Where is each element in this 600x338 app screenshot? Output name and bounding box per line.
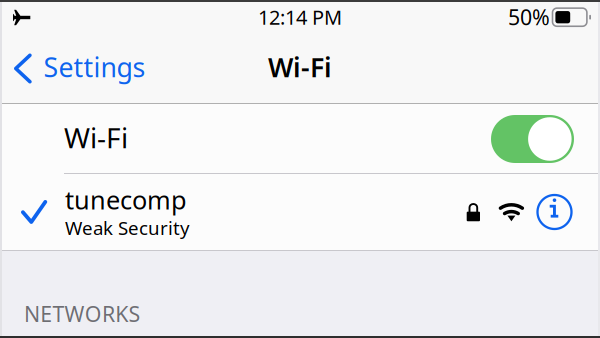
button[interactable]: Wi-Fi on — [491, 115, 574, 163]
staticText: Wi-Fi — [64, 119, 128, 156]
staticText: NETWORKS — [24, 300, 140, 328]
staticText: 50% — [508, 3, 550, 31]
staticText: tunecomp — [65, 183, 187, 216]
button[interactable]: Settings — [0, 38, 157, 104]
staticText: Settings — [43, 49, 145, 85]
staticText: 12:14 PM — [258, 4, 342, 30]
button[interactable]: tunecomp — [0, 174, 600, 250]
staticText: Wi-Fi — [268, 49, 332, 85]
staticText: Weak Security — [65, 215, 190, 240]
